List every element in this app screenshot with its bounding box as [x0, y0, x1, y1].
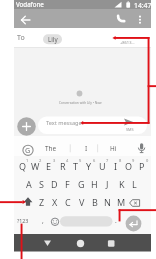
staticText: A	[26, 178, 32, 190]
button[interactable]: O	[122, 158, 135, 174]
button[interactable]: R	[56, 158, 69, 174]
button[interactable]: U	[96, 158, 109, 174]
staticText: M	[117, 196, 126, 208]
button[interactable]: H	[88, 176, 101, 192]
button[interactable]	[127, 195, 143, 209]
staticText: C	[65, 196, 71, 208]
button[interactable]: F	[61, 176, 74, 192]
staticText: G	[78, 178, 85, 190]
button[interactable]: G	[75, 176, 88, 192]
staticText: R	[60, 160, 66, 172]
staticText: ?123	[17, 217, 29, 224]
button[interactable]: Y	[82, 158, 95, 174]
button[interactable]: A	[22, 176, 35, 192]
button[interactable]: I	[76, 141, 96, 155]
staticText: L	[132, 178, 137, 190]
staticText: B	[92, 196, 98, 208]
button[interactable]: E	[42, 158, 55, 174]
staticText: 2	[39, 158, 42, 163]
button[interactable]: ,	[38, 213, 48, 227]
button[interactable]: C	[61, 194, 74, 210]
staticText: P	[139, 160, 145, 172]
staticText: 3	[53, 158, 56, 163]
staticText: 14:47	[134, 1, 152, 10]
staticText: 1	[26, 158, 29, 163]
staticText: Q	[19, 160, 27, 172]
button[interactable]: Q	[16, 158, 29, 174]
staticText: 4	[66, 158, 69, 163]
staticText: U	[99, 160, 106, 172]
button[interactable]	[43, 34, 62, 45]
staticText: I	[85, 144, 88, 153]
staticText: +8613...	[120, 40, 135, 45]
staticText: I	[114, 160, 118, 172]
staticText: E	[46, 160, 52, 172]
staticText: Vodafone	[16, 0, 44, 8]
button[interactable]: .	[112, 213, 120, 227]
staticText: Y	[86, 160, 92, 172]
staticText: H	[91, 178, 98, 190]
button[interactable]	[135, 142, 148, 155]
button[interactable]: X	[48, 194, 61, 210]
button[interactable]	[38, 236, 57, 251]
button[interactable]	[17, 117, 36, 136]
button[interactable]	[71, 236, 90, 251]
button[interactable]	[20, 194, 36, 210]
button[interactable]	[125, 215, 142, 232]
button[interactable]	[38, 117, 118, 135]
button[interactable]: B	[88, 194, 101, 210]
staticText: S	[39, 178, 44, 190]
staticText: N	[104, 196, 111, 208]
staticText: 5	[79, 158, 82, 163]
staticText: W	[31, 160, 40, 172]
button[interactable]	[16, 11, 34, 28]
staticText: 9	[132, 158, 135, 163]
staticText: .	[115, 216, 117, 225]
button[interactable]: K	[115, 176, 128, 192]
button[interactable]: Z	[35, 194, 48, 210]
button[interactable]: N	[101, 194, 114, 210]
staticText: Z	[39, 196, 45, 208]
button[interactable]	[102, 236, 121, 251]
button[interactable]: P	[135, 158, 148, 174]
button[interactable]	[60, 216, 113, 227]
button[interactable]: J	[101, 176, 114, 192]
staticText: F	[65, 178, 70, 190]
staticText: V	[79, 196, 85, 208]
button[interactable]: ?123	[15, 213, 31, 227]
staticText: The	[45, 144, 57, 153]
staticText: T	[73, 160, 79, 172]
button[interactable]: M	[115, 194, 128, 210]
button[interactable]: I	[109, 158, 122, 174]
staticText: D	[51, 178, 58, 190]
button[interactable]: The	[41, 141, 61, 155]
button[interactable]	[114, 11, 131, 28]
staticText: X	[52, 196, 58, 208]
staticText: G	[25, 145, 31, 155]
button[interactable]	[120, 115, 147, 134]
button[interactable]: S	[35, 176, 48, 192]
button[interactable]	[133, 11, 147, 28]
button[interactable]: L	[128, 176, 141, 192]
button[interactable]: Hi	[103, 141, 123, 155]
staticText: O	[125, 160, 133, 172]
staticText: Hi	[110, 144, 117, 153]
staticText: K	[119, 178, 125, 190]
staticText: 7	[106, 158, 109, 163]
staticText: ,	[42, 216, 44, 225]
staticText: To	[17, 33, 25, 43]
staticText: SMS	[126, 127, 134, 132]
button[interactable]: T	[69, 158, 82, 174]
staticText: 6	[93, 158, 96, 163]
button[interactable]: D	[48, 176, 61, 192]
staticText: 0	[146, 158, 149, 163]
staticText: J	[106, 178, 109, 190]
button[interactable]	[48, 214, 62, 229]
button[interactable]: V	[75, 194, 88, 210]
staticText: 8	[119, 158, 122, 163]
button[interactable]	[21, 144, 35, 157]
staticText: Text message	[46, 119, 82, 127]
staticText: Conversation with Lily • Now	[59, 101, 102, 105]
button[interactable]: W	[29, 158, 42, 174]
staticText: Lily	[48, 35, 58, 43]
